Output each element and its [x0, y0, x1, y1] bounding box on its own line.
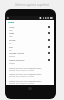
staticText: Audio — [9, 26, 15, 29]
button[interactable]: Stream — [6, 38, 54, 45]
staticText: On — [9, 42, 12, 44]
staticText: Stream — [9, 39, 16, 42]
staticText: Stream only over Wi-Fi networks when — [9, 67, 42, 69]
staticText: Sync — [9, 46, 14, 49]
staticText: Video — [9, 32, 15, 35]
button[interactable]: Video — [6, 31, 54, 38]
button[interactable]: Storage location — [6, 51, 54, 58]
staticText: Reduce data usage on mobile — [9, 69, 34, 71]
button[interactable]: Home — [28, 87, 32, 90]
button[interactable]: Audio — [6, 25, 54, 32]
staticText: Reduce data usage on mobile — [9, 75, 34, 77]
staticText: Audio — [8, 21, 15, 24]
staticText: Stream only over Wi-Fi networks when — [9, 73, 42, 75]
staticText: Off — [9, 49, 12, 51]
staticText: Stream only over Wi-Fi networks when — [9, 80, 42, 82]
staticText: Mobile networks — [9, 59, 25, 62]
staticText: Auto — [9, 35, 13, 37]
staticText: Gehirne against superfast — [15, 3, 50, 7]
staticText: Internal — [9, 55, 15, 57]
button[interactable]: Mobile networks — [6, 58, 54, 65]
staticText: Reduce data usage on mobile — [9, 82, 34, 84]
button[interactable]: Sync — [6, 45, 54, 52]
staticText: High — [9, 29, 13, 31]
staticText: Storage location — [9, 52, 25, 55]
staticText: Limited — [9, 62, 15, 64]
